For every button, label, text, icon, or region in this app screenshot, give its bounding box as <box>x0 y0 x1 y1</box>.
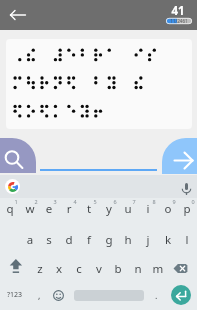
staticText: l <box>177 232 197 248</box>
staticText: 0 <box>191 198 195 205</box>
staticText: s <box>39 232 59 248</box>
staticText: 9 <box>172 198 176 205</box>
button[interactable]: z <box>30 256 50 282</box>
button[interactable]: Emoji <box>50 282 67 308</box>
button[interactable]: k <box>158 227 178 253</box>
button[interactable]: q <box>0 196 20 222</box>
button[interactable]: h <box>118 227 138 253</box>
staticText: 41 <box>166 3 190 16</box>
staticText: , <box>38 289 41 301</box>
button[interactable]: v <box>89 256 109 282</box>
button[interactable]: j <box>138 227 158 253</box>
button[interactable]: ?123 <box>0 282 30 308</box>
button[interactable]: . <box>148 282 165 308</box>
staticText: 6 <box>113 198 117 205</box>
button[interactable]: o <box>158 196 178 222</box>
staticText: j <box>138 232 158 248</box>
button[interactable]: Backspace <box>168 256 194 282</box>
staticText: e <box>39 201 59 217</box>
staticText: 5 <box>93 198 97 205</box>
staticText: c <box>69 261 89 277</box>
staticText: n <box>128 261 148 277</box>
staticText: ?123 <box>7 290 23 300</box>
staticText: f <box>79 232 99 248</box>
staticText: d <box>59 232 79 248</box>
button[interactable]: l <box>177 227 197 253</box>
staticText: v <box>89 261 109 277</box>
staticText: h <box>118 232 138 248</box>
button[interactable]: a <box>20 227 40 253</box>
staticText: t <box>79 201 99 217</box>
staticText: p <box>177 201 197 217</box>
staticText: w <box>20 201 40 217</box>
button[interactable]: e <box>39 196 59 222</box>
button[interactable]: r <box>59 196 79 222</box>
staticText: k <box>158 232 178 248</box>
staticText: 3 <box>53 198 57 205</box>
button[interactable]: Back <box>8 5 28 25</box>
button[interactable]: t <box>79 196 99 222</box>
staticText: 7 <box>132 198 136 205</box>
button[interactable]: s <box>39 227 59 253</box>
staticText: z <box>30 261 50 277</box>
button[interactable]: 11/2461 <box>166 18 192 24</box>
button[interactable]: y <box>99 196 119 222</box>
button[interactable]: b <box>108 256 128 282</box>
staticText: u <box>118 201 138 217</box>
staticText: 4 <box>73 198 77 205</box>
staticText: 11/2461 <box>166 18 192 24</box>
staticText: 8 <box>152 198 156 205</box>
button[interactable]: f <box>79 227 99 253</box>
staticText: x <box>49 261 69 277</box>
staticText: 2 <box>34 198 38 205</box>
button[interactable]: Search <box>0 138 36 173</box>
button[interactable]: g <box>99 227 119 253</box>
staticText: 1 <box>14 198 18 205</box>
button[interactable]: i <box>138 196 158 222</box>
button[interactable]: x <box>49 256 69 282</box>
button[interactable]: Voice input <box>179 179 194 194</box>
button[interactable]: Enter <box>171 285 191 305</box>
button[interactable]: p <box>177 196 197 222</box>
staticText: m <box>148 261 168 277</box>
staticText: r <box>59 201 79 217</box>
staticText: i <box>138 201 158 217</box>
staticText: g <box>99 232 119 248</box>
button[interactable]: d <box>59 227 79 253</box>
button[interactable]: Shift <box>2 256 29 282</box>
staticText: a <box>20 232 40 248</box>
staticText: q <box>0 201 20 217</box>
staticText: y <box>99 201 119 217</box>
button[interactable]: c <box>69 256 89 282</box>
button[interactable]: Google <box>5 179 20 194</box>
button[interactable]: , <box>31 282 48 308</box>
staticText: o <box>158 201 178 217</box>
button[interactable]: u <box>118 196 138 222</box>
staticText: . <box>155 289 158 301</box>
button[interactable]: m <box>148 256 168 282</box>
button[interactable]: w <box>20 196 40 222</box>
button[interactable]: n <box>128 256 148 282</box>
staticText: b <box>108 261 128 277</box>
button[interactable]: Next <box>162 138 197 174</box>
